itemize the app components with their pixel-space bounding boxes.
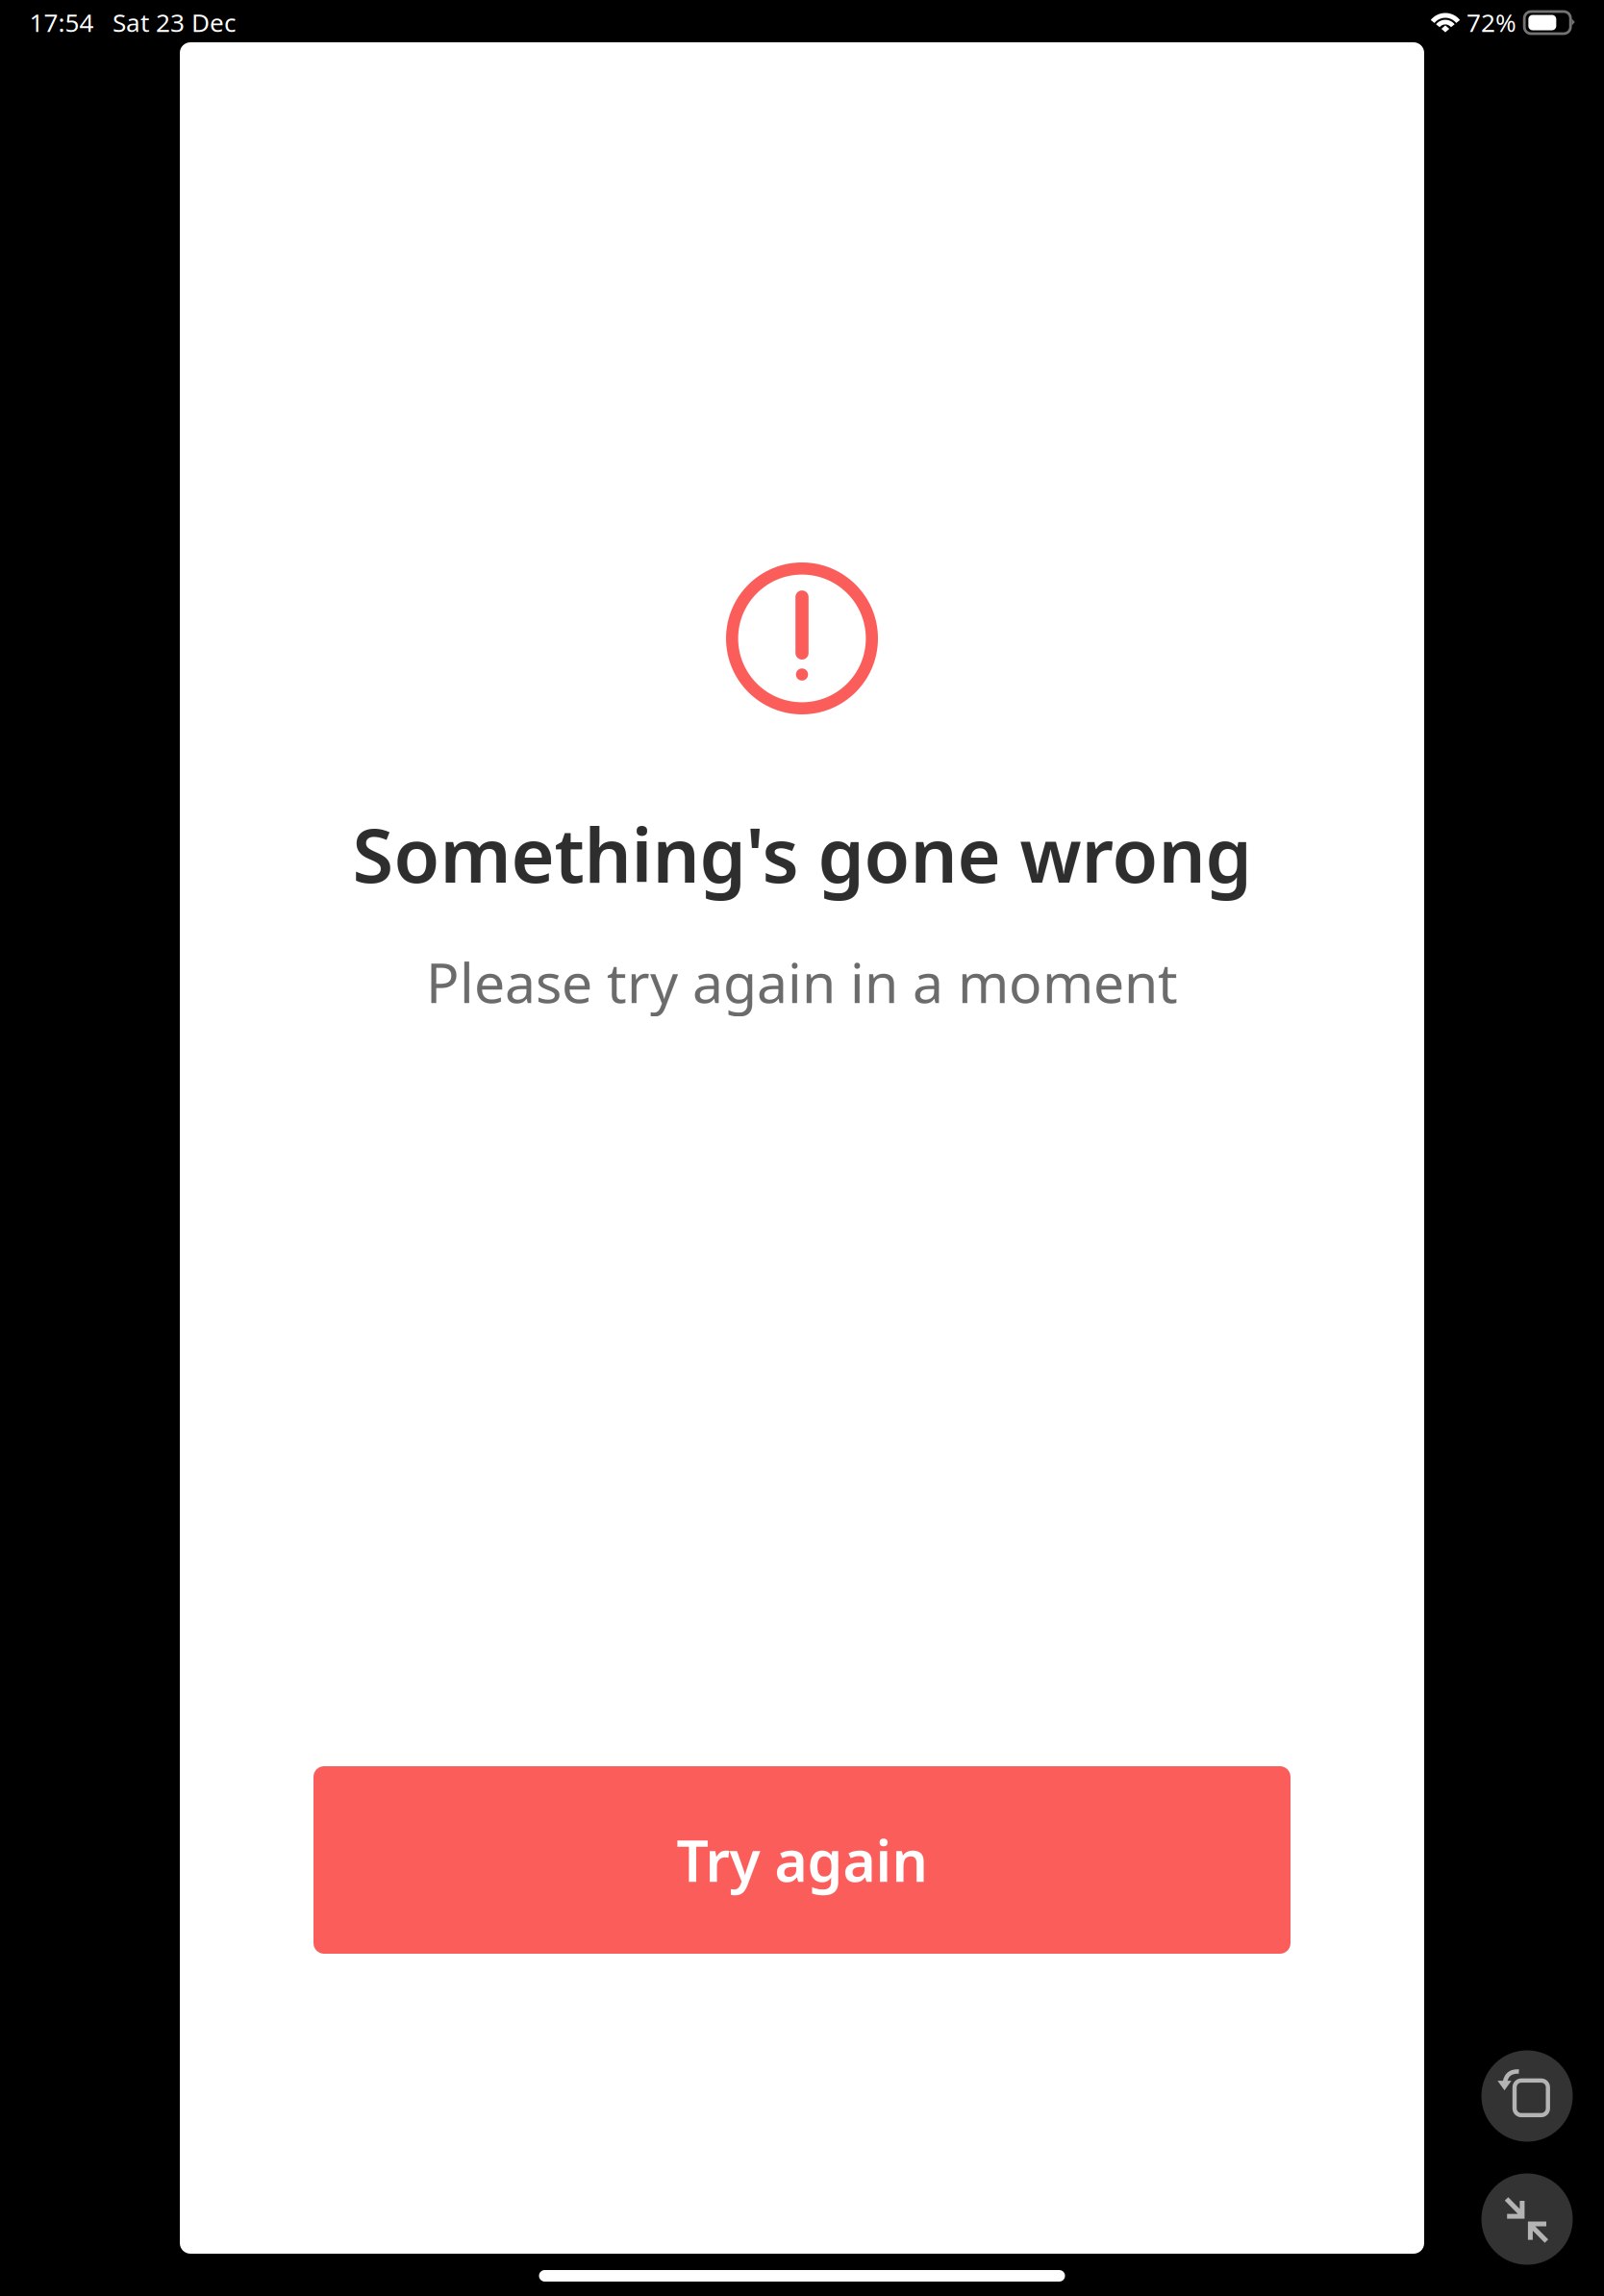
staticText: Something's gone wrong <box>352 803 1252 904</box>
staticText: 72% <box>1466 5 1516 39</box>
button[interactable]: Minimise <box>1481 2173 1573 2265</box>
button[interactable]: Rotate <box>1481 2050 1573 2142</box>
staticText: Please try again in a moment <box>426 944 1178 1019</box>
staticText: 17:54 <box>29 5 94 39</box>
staticText: Try again <box>677 1822 927 1898</box>
staticText: Sat 23 Dec <box>113 5 237 39</box>
button[interactable]: Try again <box>313 1766 1291 1954</box>
